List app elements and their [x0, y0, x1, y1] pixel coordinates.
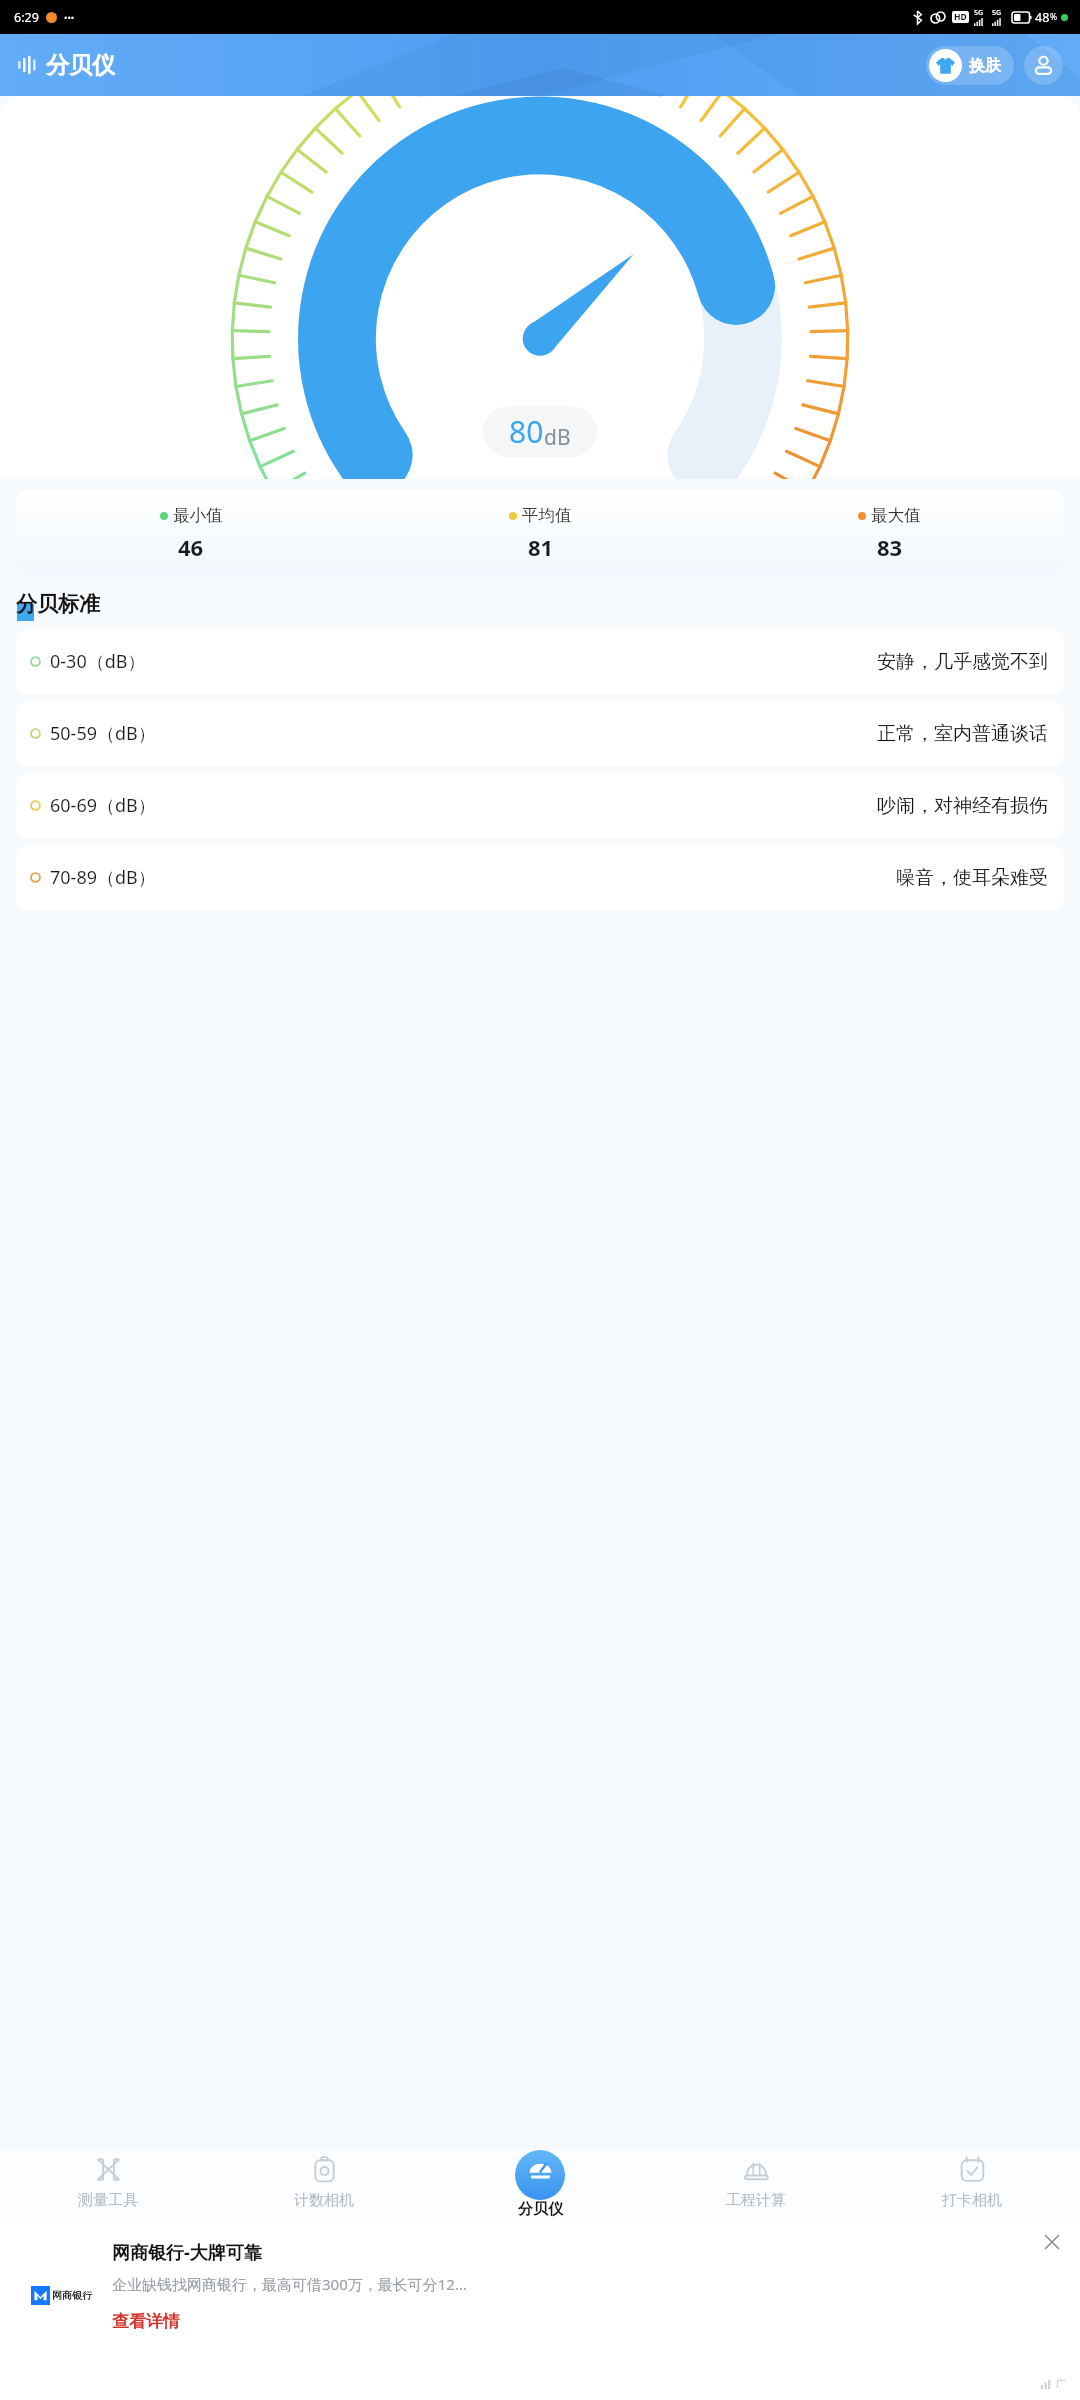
button[interactable]: 打卡相机 — [864, 2150, 1080, 2222]
staticText: 平均值 — [522, 505, 572, 526]
staticText: 网商银行-大牌可靠 — [112, 2240, 262, 2265]
button[interactable]: Close ad — [1038, 2228, 1066, 2256]
staticText: 60-69（dB） — [50, 793, 156, 818]
button[interactable]: 50-59（dB） — [16, 701, 1064, 766]
button[interactable]: 查看详情 — [112, 2311, 180, 2332]
staticText: % — [1050, 11, 1058, 23]
staticText: 安静，几乎感觉不到 — [877, 650, 1048, 674]
button[interactable]: 分贝仪 — [432, 2150, 648, 2222]
staticText: 噪音，使耳朵难受 — [896, 866, 1048, 890]
staticText: 5G — [992, 8, 1002, 18]
staticText: dB — [544, 423, 571, 452]
staticText: 换肤 — [969, 56, 1001, 76]
staticText: 0-30（dB） — [50, 649, 146, 674]
staticText: 分贝标准 — [16, 591, 100, 617]
staticText: 5G — [974, 8, 984, 18]
staticText: 最小值 — [173, 505, 223, 526]
button[interactable]: 计数相机 — [216, 2150, 432, 2222]
button[interactable]: 最小值 — [16, 490, 1064, 577]
button[interactable]: 70-89（dB） — [16, 845, 1064, 910]
staticText: ••• — [64, 11, 75, 23]
button[interactable]: 60-69（dB） — [16, 773, 1064, 838]
staticText: 正常，室内普通谈话 — [877, 722, 1048, 746]
staticText: 81 — [528, 532, 554, 562]
staticText: 83 — [877, 532, 903, 562]
staticText: 吵闹，对神经有损伤 — [877, 794, 1048, 818]
staticText: 测量工具 — [78, 2191, 138, 2210]
staticText: 最大值 — [871, 505, 921, 526]
staticText: 48 — [1035, 9, 1050, 26]
staticText: 计数相机 — [294, 2191, 354, 2210]
button[interactable]: 工程计算 — [648, 2150, 864, 2222]
staticText: 46 — [178, 532, 204, 562]
button[interactable]: Profile — [1024, 46, 1063, 85]
staticText: 网商银行 — [52, 2289, 92, 2302]
staticText: 50-59（dB） — [50, 721, 156, 746]
staticText: 70-89（dB） — [50, 865, 156, 890]
staticText: 企业缺钱找网商银行，最高可借300万，最长可分12… — [112, 2274, 467, 2294]
staticText: 分贝仪 — [518, 2200, 563, 2219]
staticText: 6:29 — [14, 9, 39, 26]
button[interactable]: 0-30（dB） — [16, 629, 1064, 694]
staticText: 分贝仪 — [46, 51, 115, 80]
button[interactable]: 测量工具 — [0, 2150, 216, 2222]
staticText: HD — [954, 11, 967, 23]
button[interactable]: 换肤 — [926, 46, 1014, 85]
staticText: 80 — [509, 411, 544, 452]
staticText: 打卡相机 — [942, 2191, 1002, 2210]
staticText: 广 — [1056, 2377, 1066, 2390]
staticText: 工程计算 — [726, 2191, 786, 2210]
